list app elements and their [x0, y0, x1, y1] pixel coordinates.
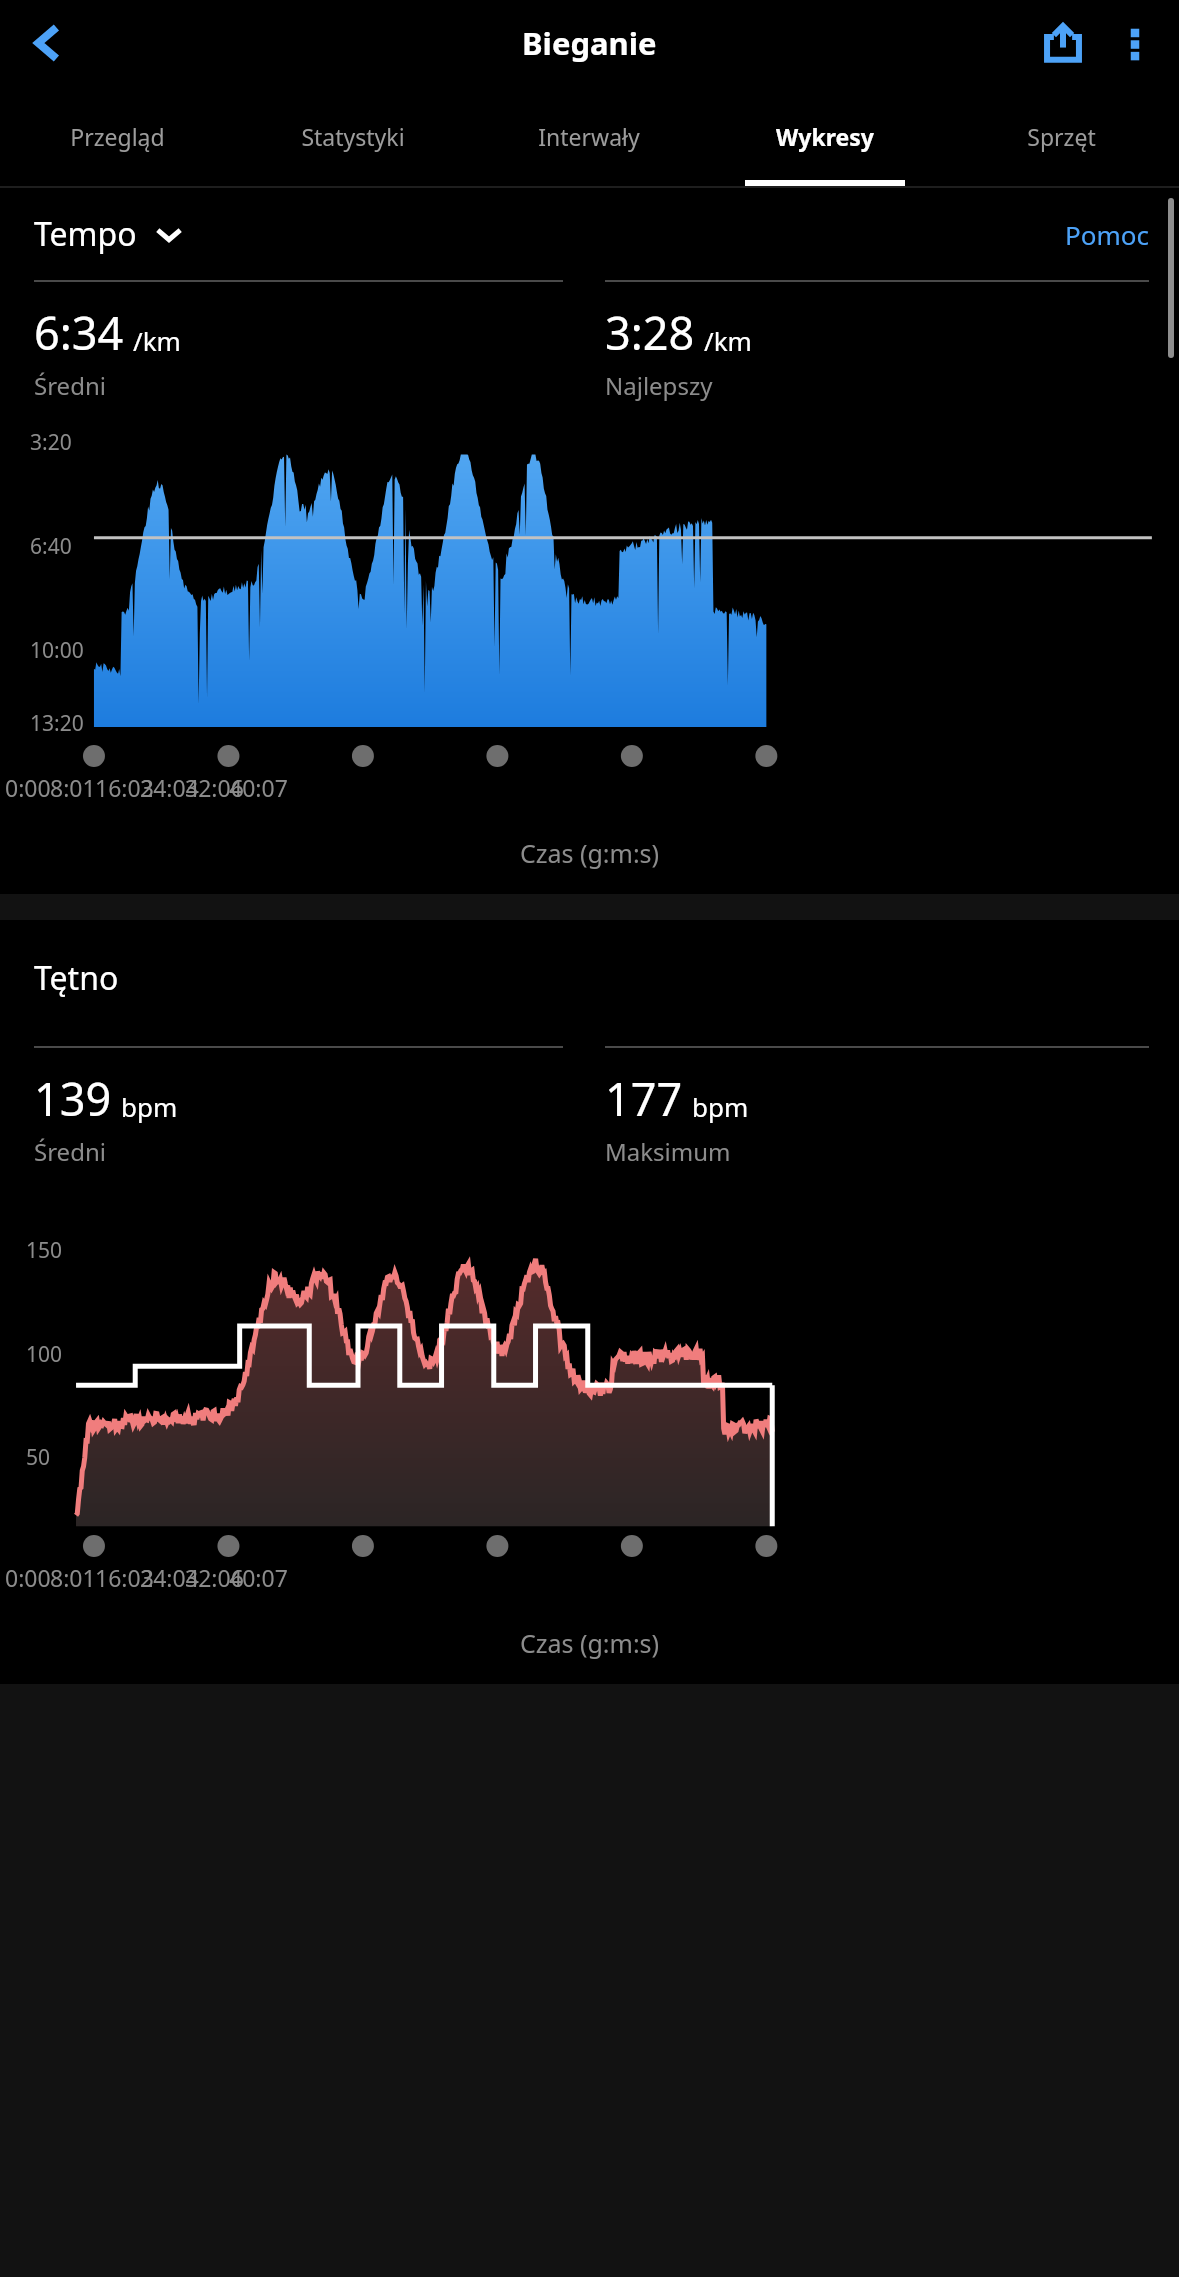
button[interactable]: Interwały — [471, 86, 707, 186]
staticText: Tętno — [34, 956, 119, 1000]
staticText: 32:06 — [185, 772, 244, 803]
button[interactable]: Przegląd — [0, 86, 235, 186]
staticText: 40:07 — [229, 1562, 288, 1593]
staticText: 0:00 — [5, 1562, 51, 1593]
staticText: 150 — [26, 1236, 63, 1265]
staticText: 8:01 — [50, 772, 96, 803]
staticText: Średni — [34, 1135, 106, 1168]
staticText: 32:06 — [185, 1562, 244, 1593]
staticText: 10:00 — [30, 636, 84, 665]
staticText: Maksimum — [605, 1135, 731, 1168]
button[interactable]: Wykresy — [707, 86, 943, 186]
staticText: Czas (g:m:s) — [0, 836, 1179, 870]
staticText: 16:03 — [95, 1562, 154, 1593]
staticText: 3:20 — [30, 428, 72, 457]
staticText: Bieganie — [522, 22, 657, 64]
staticText: 0:00 — [5, 772, 51, 803]
staticText: bpm — [121, 1089, 178, 1124]
staticText: 16:03 — [95, 772, 154, 803]
button[interactable]: Statystyki — [235, 86, 471, 186]
staticText: 177 — [605, 1068, 683, 1129]
staticText: 6:34 — [34, 302, 124, 363]
button[interactable]: Sprzęt — [943, 86, 1179, 186]
staticText: Najlepszy — [605, 369, 713, 402]
staticText: Średni — [34, 369, 106, 402]
staticText: 24:04 — [140, 772, 199, 803]
button[interactable]: Share — [1027, 7, 1099, 79]
button[interactable]: Tempo — [34, 212, 183, 256]
staticText: 139 — [34, 1068, 112, 1129]
staticText: Tempo — [34, 212, 137, 256]
staticText: Sprzęt — [1027, 121, 1096, 152]
button[interactable]: More options — [1099, 7, 1171, 79]
staticText: Pomoc — [1065, 217, 1149, 252]
staticText: 40:07 — [229, 772, 288, 803]
staticText: Interwały — [538, 121, 640, 152]
staticText: 50 — [26, 1443, 51, 1472]
staticText: /km — [704, 323, 752, 358]
staticText: bpm — [692, 1089, 749, 1124]
staticText: 8:01 — [50, 1562, 96, 1593]
staticText: /km — [133, 323, 181, 358]
staticText: Przegląd — [70, 121, 165, 152]
button[interactable]: Pomoc — [1065, 217, 1149, 252]
staticText: Wykresy — [776, 121, 874, 152]
staticText: 100 — [26, 1340, 63, 1369]
button[interactable]: Back — [12, 7, 84, 79]
staticText: Statystyki — [301, 121, 405, 152]
staticText: 3:28 — [605, 302, 695, 363]
staticText: 24:04 — [140, 1562, 199, 1593]
staticText: 6:40 — [30, 532, 72, 561]
staticText: Czas (g:m:s) — [0, 1626, 1179, 1660]
staticText: 13:20 — [30, 709, 84, 738]
